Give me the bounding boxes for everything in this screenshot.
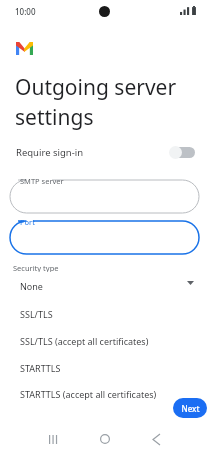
button[interactable]: STARTTLS (accept all certificates) [8, 381, 175, 406]
button[interactable]: STARTTLS [8, 354, 175, 381]
staticText: SSL/TLS [20, 308, 53, 320]
staticText: Require sign-in [16, 146, 84, 159]
button[interactable]: Port [10, 221, 199, 254]
button[interactable]: Recent apps [38, 424, 68, 454]
button[interactable]: Next [173, 398, 207, 418]
staticText: Port [20, 217, 35, 227]
button[interactable]: Require sign-in toggle [169, 146, 195, 159]
staticText: STARTTLS (accept all certificates) [20, 388, 157, 400]
staticText: SMTP server [20, 176, 64, 186]
staticText: 10:00 [15, 6, 36, 17]
button[interactable]: SSL/TLS (accept all certificates) [8, 327, 175, 354]
staticText: None [20, 280, 43, 292]
staticText: Security type [13, 263, 59, 273]
staticText: settings [15, 103, 94, 132]
button[interactable]: SSL/TLS [8, 300, 175, 327]
staticText: STARTTLS [20, 362, 61, 374]
staticText: SSL/TLS (accept all certificates) [20, 335, 149, 347]
button[interactable]: Require sign-in [0, 141, 209, 163]
button[interactable]: Home [90, 424, 120, 454]
button[interactable]: Open security type menu [181, 274, 199, 292]
button[interactable]: Back [141, 424, 171, 454]
button[interactable]: SMTP server [10, 180, 199, 213]
staticText: Next [181, 403, 200, 414]
button[interactable]: None [8, 272, 175, 300]
staticText: Outgoing server [15, 73, 177, 102]
